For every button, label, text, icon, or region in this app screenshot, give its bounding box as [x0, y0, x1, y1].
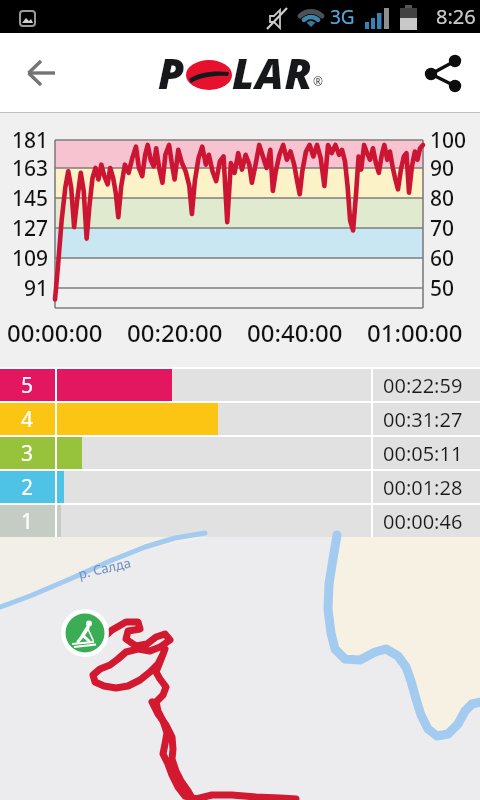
button[interactable]: 4 [0, 403, 480, 435]
staticText: 01:00:00 [367, 316, 463, 344]
staticText: 91 [24, 274, 49, 302]
staticText: 00:31:27 [383, 406, 463, 433]
staticText: 3G [330, 4, 355, 30]
staticText: 109 [12, 244, 49, 272]
staticText: 00:22:59 [383, 372, 463, 399]
staticText: 60 [430, 244, 455, 272]
staticText: P [158, 44, 186, 101]
staticText: 163 [12, 154, 49, 182]
staticText: 8:26 [436, 3, 476, 30]
staticText: LAR [232, 44, 313, 101]
staticText: 00:00:00 [7, 316, 103, 344]
button[interactable]: 2 [0, 471, 480, 503]
staticText: 00:05:11 [383, 440, 463, 467]
staticText: 5 [21, 371, 34, 400]
staticText: 1 [21, 507, 34, 536]
staticText: ® [313, 73, 323, 89]
staticText: 4 [21, 405, 34, 434]
staticText: 80 [430, 184, 455, 212]
button[interactable] [415, 45, 471, 101]
staticText: 00:40:00 [247, 316, 343, 344]
staticText: 90 [430, 154, 455, 182]
staticText: 70 [430, 214, 455, 242]
staticText: 100 [430, 126, 467, 154]
staticText: 181 [12, 126, 49, 154]
staticText: 00:20:00 [127, 316, 223, 344]
staticText: 50 [430, 274, 455, 302]
button[interactable]: P [158, 44, 323, 101]
button[interactable]: 1 [0, 505, 480, 537]
staticText: 145 [12, 184, 49, 212]
staticText: 127 [12, 214, 49, 242]
button[interactable] [14, 45, 70, 101]
button[interactable]: 3 [0, 437, 480, 469]
button[interactable]: 5 [0, 369, 480, 401]
staticText: р. Салда [77, 553, 133, 583]
staticText: 00:01:28 [383, 474, 463, 501]
staticText: 3 [21, 439, 34, 468]
staticText: 00:00:46 [383, 508, 463, 535]
staticText: 2 [21, 473, 34, 502]
